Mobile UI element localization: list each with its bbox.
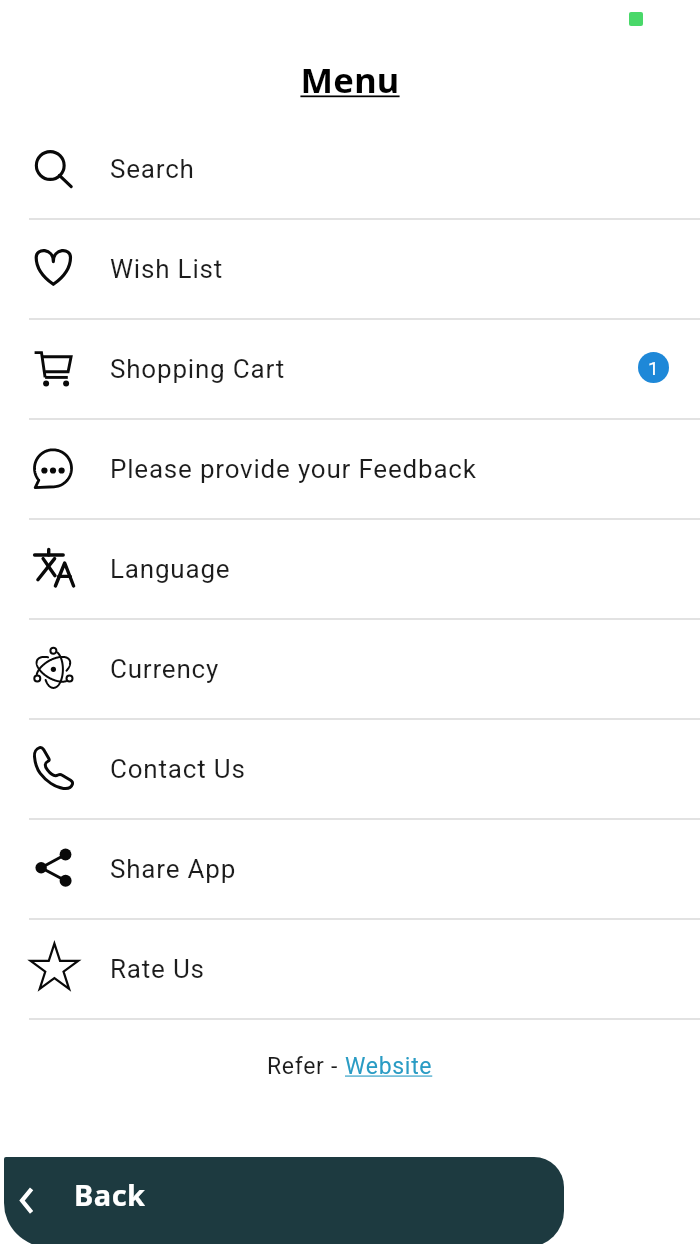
button[interactable]: Please provide your Feedback xyxy=(0,418,700,517)
staticText: Menu xyxy=(300,56,400,103)
button[interactable]: Back xyxy=(4,1157,564,1244)
button[interactable]: Share App xyxy=(0,818,700,917)
staticText: Rate Us xyxy=(110,954,205,984)
button[interactable]: Language xyxy=(0,518,700,617)
button[interactable]: Currency xyxy=(0,618,700,717)
staticText: Language xyxy=(110,554,231,584)
staticText: 1 xyxy=(648,357,659,379)
button[interactable]: Wish List xyxy=(0,218,700,317)
staticText: Please provide your Feedback xyxy=(110,454,477,484)
staticText: Back xyxy=(74,1175,146,1214)
staticText: Shopping Cart xyxy=(110,354,285,384)
button[interactable]: Website xyxy=(345,1053,433,1080)
staticText: Wish List xyxy=(110,254,224,284)
staticText: Share App xyxy=(110,854,237,884)
button[interactable]: Shopping Cart xyxy=(0,318,700,417)
button[interactable]: Contact Us xyxy=(0,718,700,817)
staticText: Contact Us xyxy=(110,754,246,784)
staticText: Refer - xyxy=(267,1053,345,1080)
staticText: Currency xyxy=(110,654,220,684)
button[interactable]: Search xyxy=(0,118,700,217)
button[interactable]: Rate Us xyxy=(0,918,700,1017)
staticText: Search xyxy=(110,154,195,184)
